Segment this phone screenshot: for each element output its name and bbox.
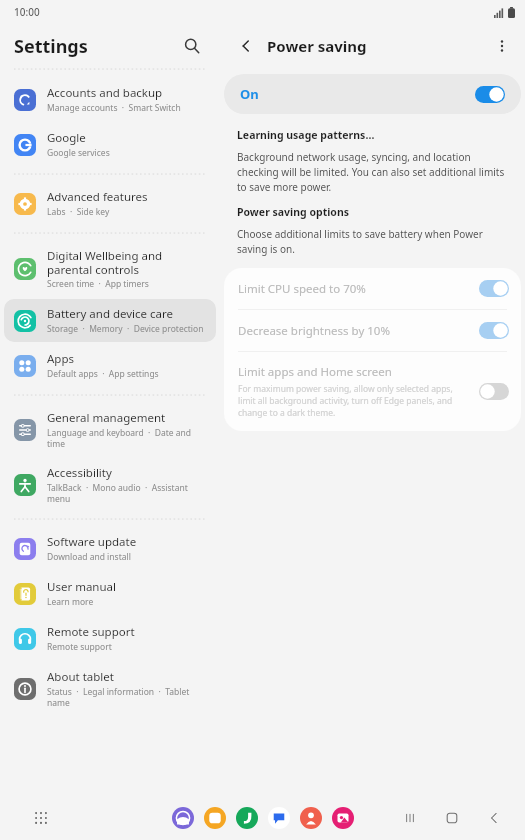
button[interactable]: Advanced features: [4, 182, 216, 225]
staticText: Settings: [14, 34, 88, 59]
staticText: Default apps · App settings: [47, 368, 159, 380]
button[interactable]: [479, 280, 509, 297]
staticText: General management: [47, 410, 166, 426]
button[interactable]: Accounts and backup: [4, 78, 216, 121]
staticText: Background network usage, syncing, and l…: [237, 150, 508, 194]
button[interactable]: Back: [234, 34, 258, 58]
button[interactable]: [479, 322, 509, 339]
button[interactable]: Google: [4, 123, 216, 166]
button[interactable]: Remote support: [4, 617, 216, 660]
staticText: Learning usage patterns…: [237, 128, 375, 142]
button[interactable]: About tablet: [4, 662, 216, 715]
staticText: Choose additional limits to save battery…: [237, 227, 508, 256]
staticText: Manage accounts · Smart Switch: [47, 102, 181, 114]
staticText: Google: [47, 130, 86, 146]
staticText: Apps: [47, 351, 75, 367]
button[interactable]: User manual: [4, 572, 216, 615]
staticText: Google services: [47, 147, 110, 159]
button[interactable]: gallery: [332, 807, 354, 829]
staticText: Digital Wellbeing and parental controls: [47, 248, 208, 277]
staticText: Language and keyboard · Date and time: [47, 427, 208, 449]
button[interactable]: Recents: [397, 805, 423, 831]
button[interactable]: Software update: [4, 527, 216, 570]
staticText: TalkBack · Mono audio · Assistant menu: [47, 482, 208, 504]
staticText: Decrease brightness by 10%: [238, 323, 390, 339]
staticText: Power saving options: [237, 205, 349, 219]
button[interactable]: files: [204, 807, 226, 829]
staticText: Storage · Memory · Device protection: [47, 323, 204, 335]
staticText: Accounts and backup: [47, 85, 163, 101]
button[interactable]: Digital Wellbeing and parental controls: [4, 241, 216, 297]
button[interactable]: On: [224, 74, 521, 114]
button[interactable]: [475, 86, 505, 103]
staticText: Screen time · App timers: [47, 278, 149, 290]
button[interactable]: General management: [4, 403, 216, 456]
staticText: Download and install: [47, 551, 131, 563]
button[interactable]: phone: [236, 807, 258, 829]
staticText: 10:00: [14, 5, 40, 19]
staticText: Accessibility: [47, 465, 112, 481]
staticText: About tablet: [47, 669, 114, 685]
button[interactable]: internet: [172, 807, 194, 829]
staticText: Power saving: [267, 36, 367, 56]
staticText: Learn more: [47, 596, 94, 608]
button[interactable]: Limit CPU speed to 70%: [224, 268, 521, 309]
staticText: On: [240, 85, 259, 103]
staticText: For maximum power saving, allow only sel…: [238, 383, 471, 419]
staticText: Software update: [47, 534, 137, 550]
button[interactable]: Decrease brightness by 10%: [224, 310, 521, 351]
button[interactable]: [479, 383, 509, 400]
button[interactable]: Back: [481, 805, 507, 831]
button[interactable]: Battery and device care: [4, 299, 216, 342]
button[interactable]: More options: [489, 33, 515, 59]
staticText: Limit apps and Home screen: [238, 364, 392, 380]
button[interactable]: Accessibility: [4, 458, 216, 511]
staticText: Status · Legal information · Tablet name: [47, 686, 208, 708]
staticText: Battery and device care: [47, 306, 174, 322]
button[interactable]: messages: [268, 807, 290, 829]
staticText: Labs · Side key: [47, 206, 110, 218]
staticText: Remote support: [47, 624, 135, 640]
staticText: Advanced features: [47, 189, 148, 205]
button[interactable]: Search: [178, 32, 206, 60]
button[interactable]: Limit apps and Home screen: [224, 352, 521, 431]
button[interactable]: Apps: [4, 344, 216, 387]
staticText: Remote support: [47, 641, 112, 653]
button[interactable]: contacts: [300, 807, 322, 829]
button[interactable]: Home: [439, 805, 465, 831]
staticText: Limit CPU speed to 70%: [238, 281, 366, 297]
button[interactable]: Apps list: [28, 805, 54, 831]
staticText: User manual: [47, 579, 116, 595]
